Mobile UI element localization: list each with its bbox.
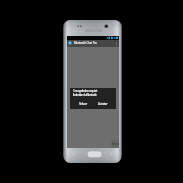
button[interactable]: Autoriser xyxy=(93,100,116,108)
staticText: Une application requiert l'activation du… xyxy=(73,89,97,97)
staticText: SAMSUNG xyxy=(85,29,103,33)
button[interactable]: Refuser xyxy=(70,100,93,108)
button[interactable]: More options xyxy=(114,40,119,47)
button[interactable]: Send xyxy=(111,140,119,148)
staticText: Refuser xyxy=(79,102,87,106)
staticText: Bluetooth Chat Pro xyxy=(74,41,97,44)
button[interactable]: Bluetooth Chat Pro xyxy=(67,40,119,47)
staticText: Autoriser xyxy=(98,102,108,106)
staticText: Send xyxy=(112,142,119,146)
